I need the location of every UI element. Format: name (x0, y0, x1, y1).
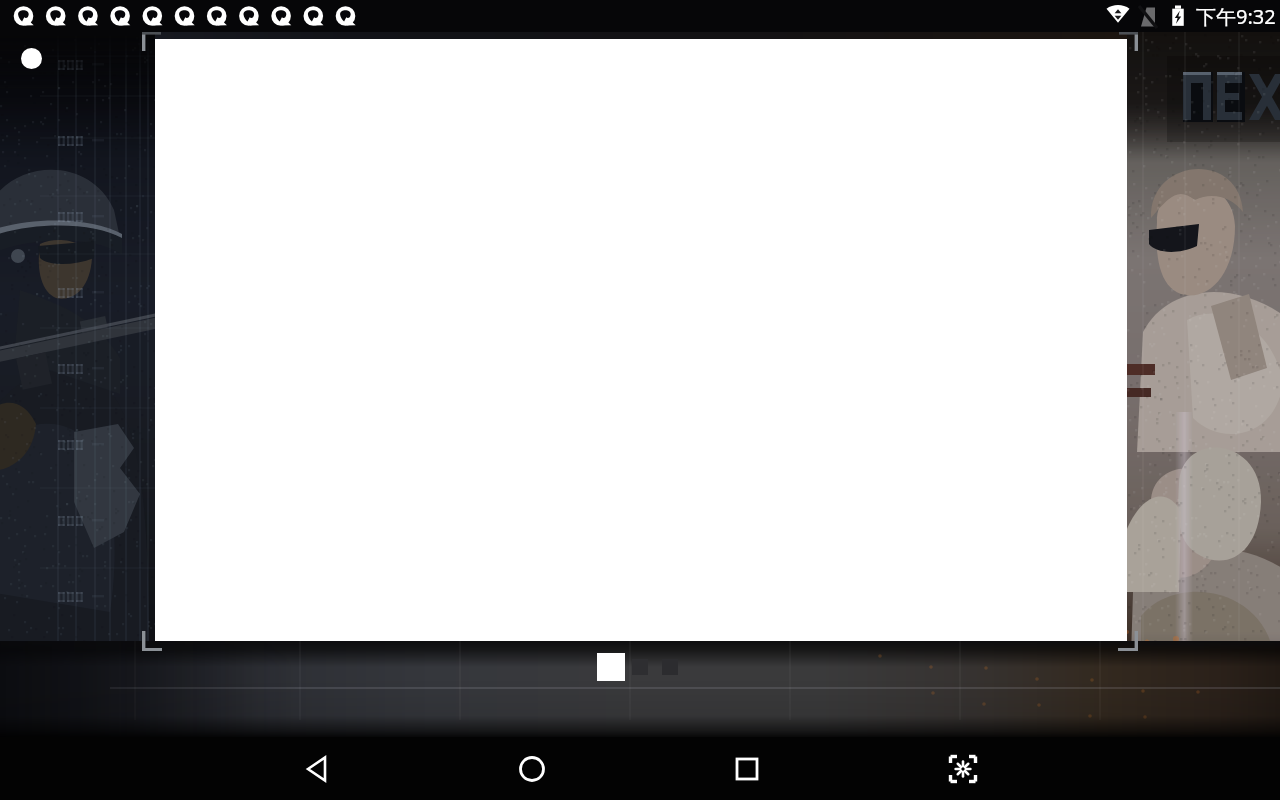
button[interactable]: Home (508, 745, 556, 793)
staticText: 下午9:32 (1196, 3, 1276, 30)
button[interactable]: Record indicator (21, 48, 42, 69)
button[interactable]: Recent apps (723, 745, 771, 793)
button[interactable]: Screenshot (939, 745, 987, 793)
button[interactable]: Back (294, 745, 342, 793)
